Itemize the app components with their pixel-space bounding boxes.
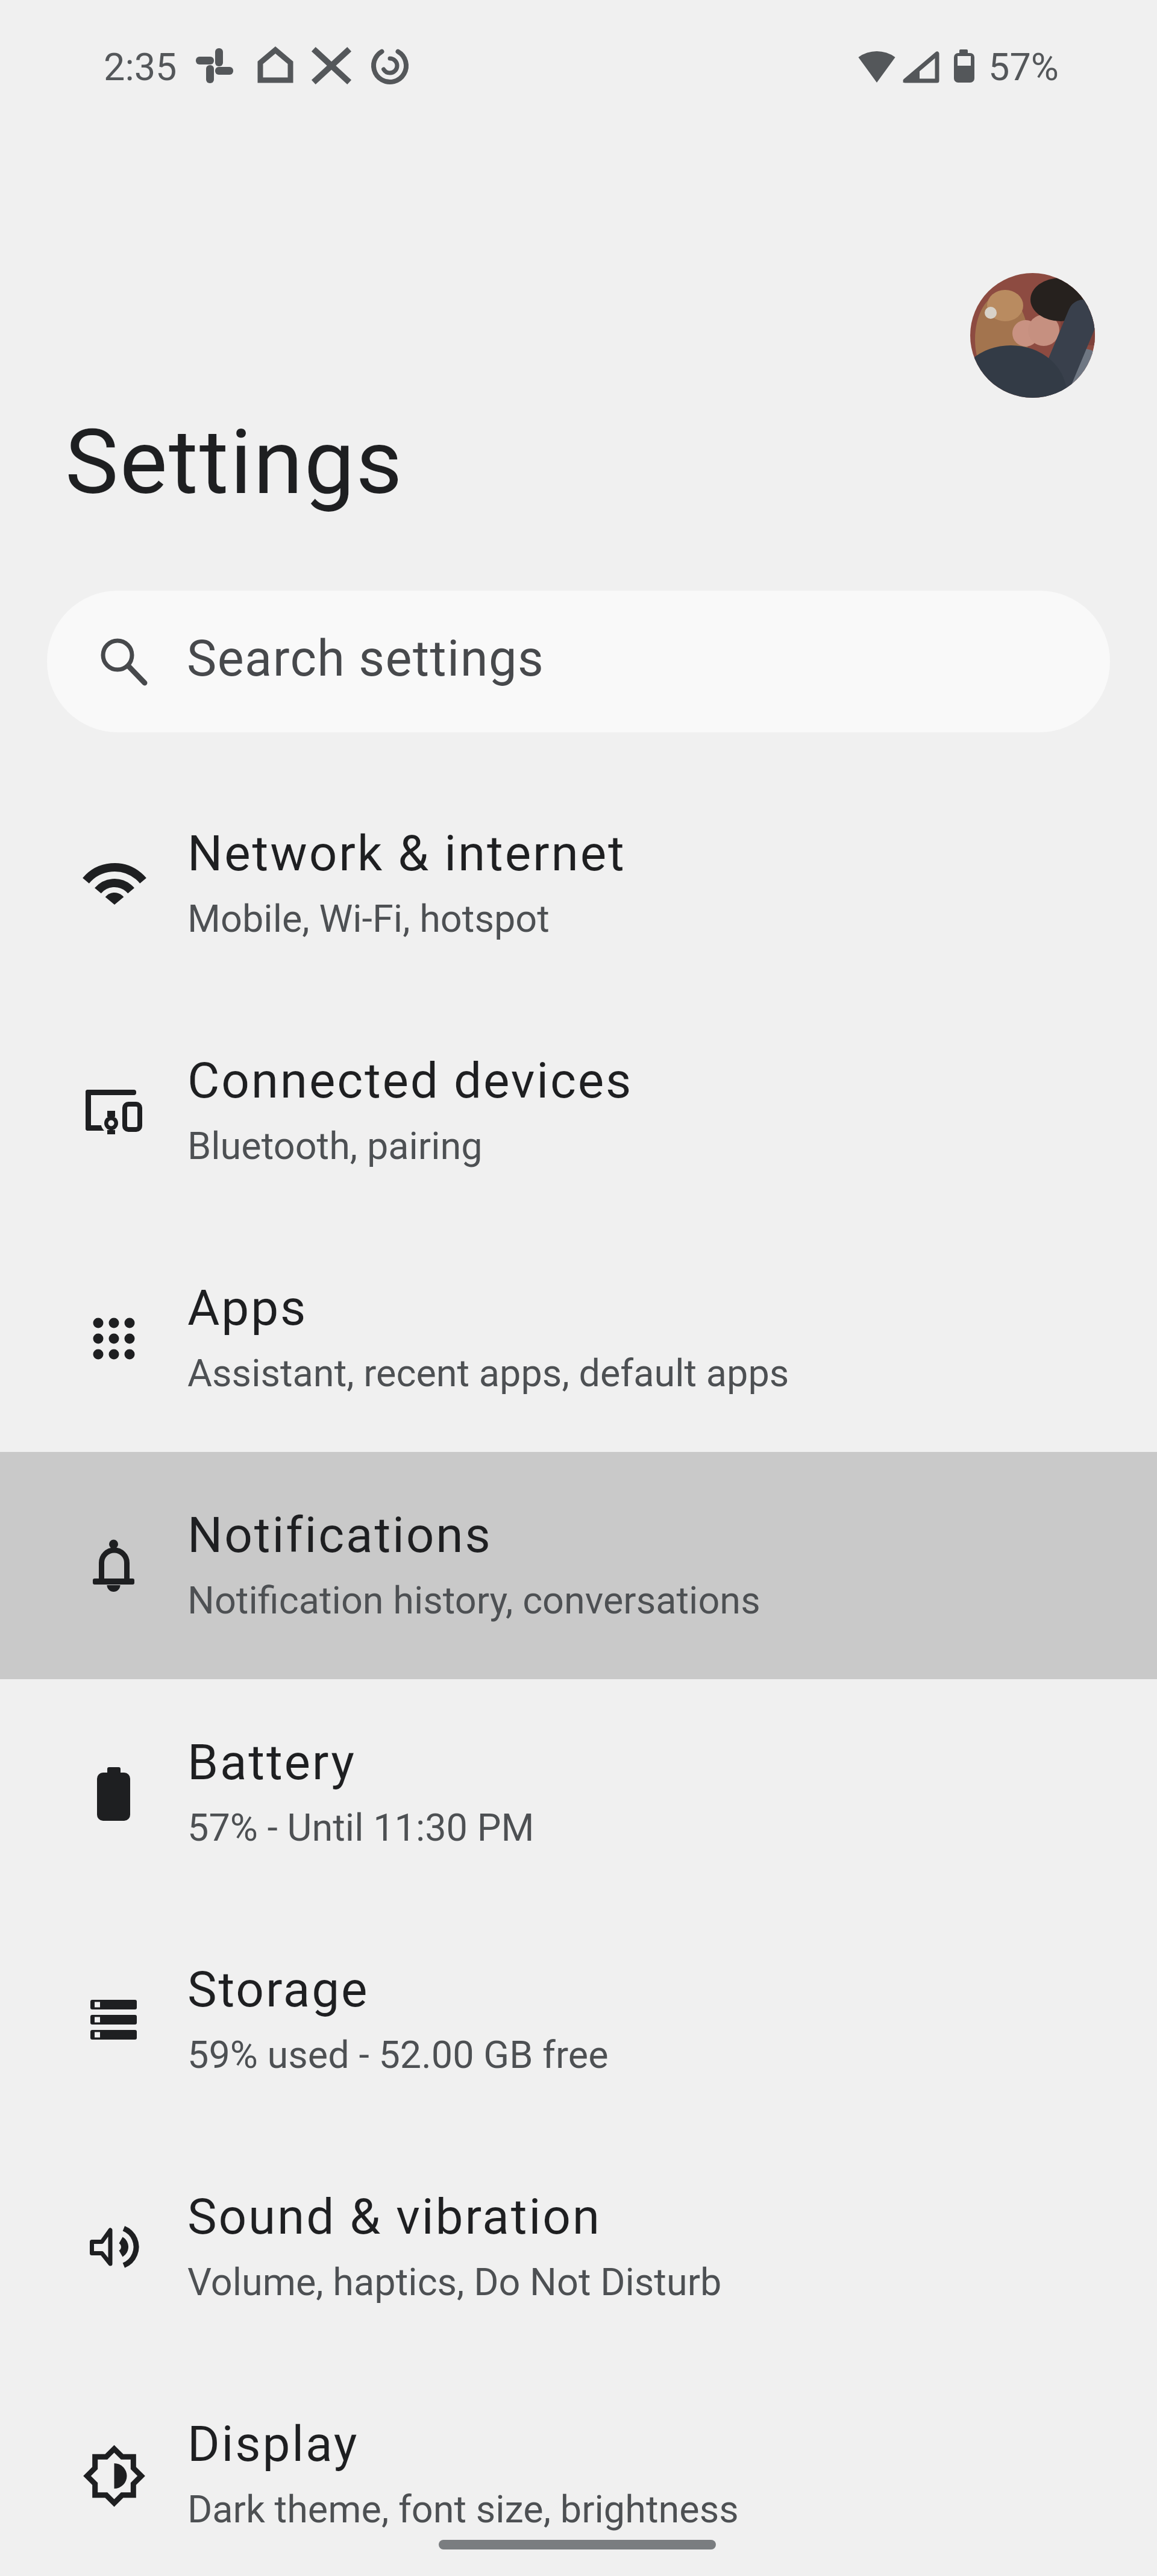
staticText: Volume, haptics, Do Not Disturb — [187, 2260, 722, 2305]
staticText: Mobile, Wi-Fi, hotspot — [187, 897, 550, 941]
button[interactable]: Sound & vibration — [0, 2134, 1157, 2361]
button[interactable]: Storage — [0, 1906, 1157, 2134]
button[interactable] — [970, 273, 1095, 398]
staticText: 57% - Until 11:30 PM — [187, 1806, 535, 1850]
staticText: 2:35 — [104, 45, 177, 90]
staticText: 59% used - 52.00 GB free — [187, 2033, 609, 2078]
staticText: Connected devices — [187, 1052, 633, 1110]
button[interactable]: Apps — [0, 1225, 1157, 1452]
staticText: Assistant, recent apps, default apps — [187, 1351, 789, 1396]
staticText: Notification history, conversations — [187, 1579, 760, 1623]
button[interactable]: Display — [0, 2361, 1157, 2576]
button[interactable] — [47, 591, 1110, 732]
staticText: Search settings — [187, 629, 545, 688]
staticText: Apps — [187, 1279, 308, 1337]
staticText: Notifications — [187, 1506, 492, 1564]
button[interactable]: Notifications — [0, 1452, 1157, 1679]
staticText: Sound & vibration — [187, 2188, 601, 2246]
staticText: Battery — [187, 1733, 356, 1791]
button[interactable]: Network & internet — [0, 770, 1157, 997]
staticText: Network & internet — [187, 825, 626, 882]
staticText: Settings — [65, 410, 404, 515]
staticText: Dark theme, font size, brightness — [187, 2487, 739, 2532]
staticText: Bluetooth, pairing — [187, 1124, 483, 1169]
staticText: 57% — [988, 45, 1059, 90]
staticText: Storage — [187, 1961, 369, 2018]
staticText: Display — [187, 2415, 359, 2473]
button[interactable]: Connected devices — [0, 997, 1157, 1225]
button[interactable]: Battery — [0, 1679, 1157, 1906]
